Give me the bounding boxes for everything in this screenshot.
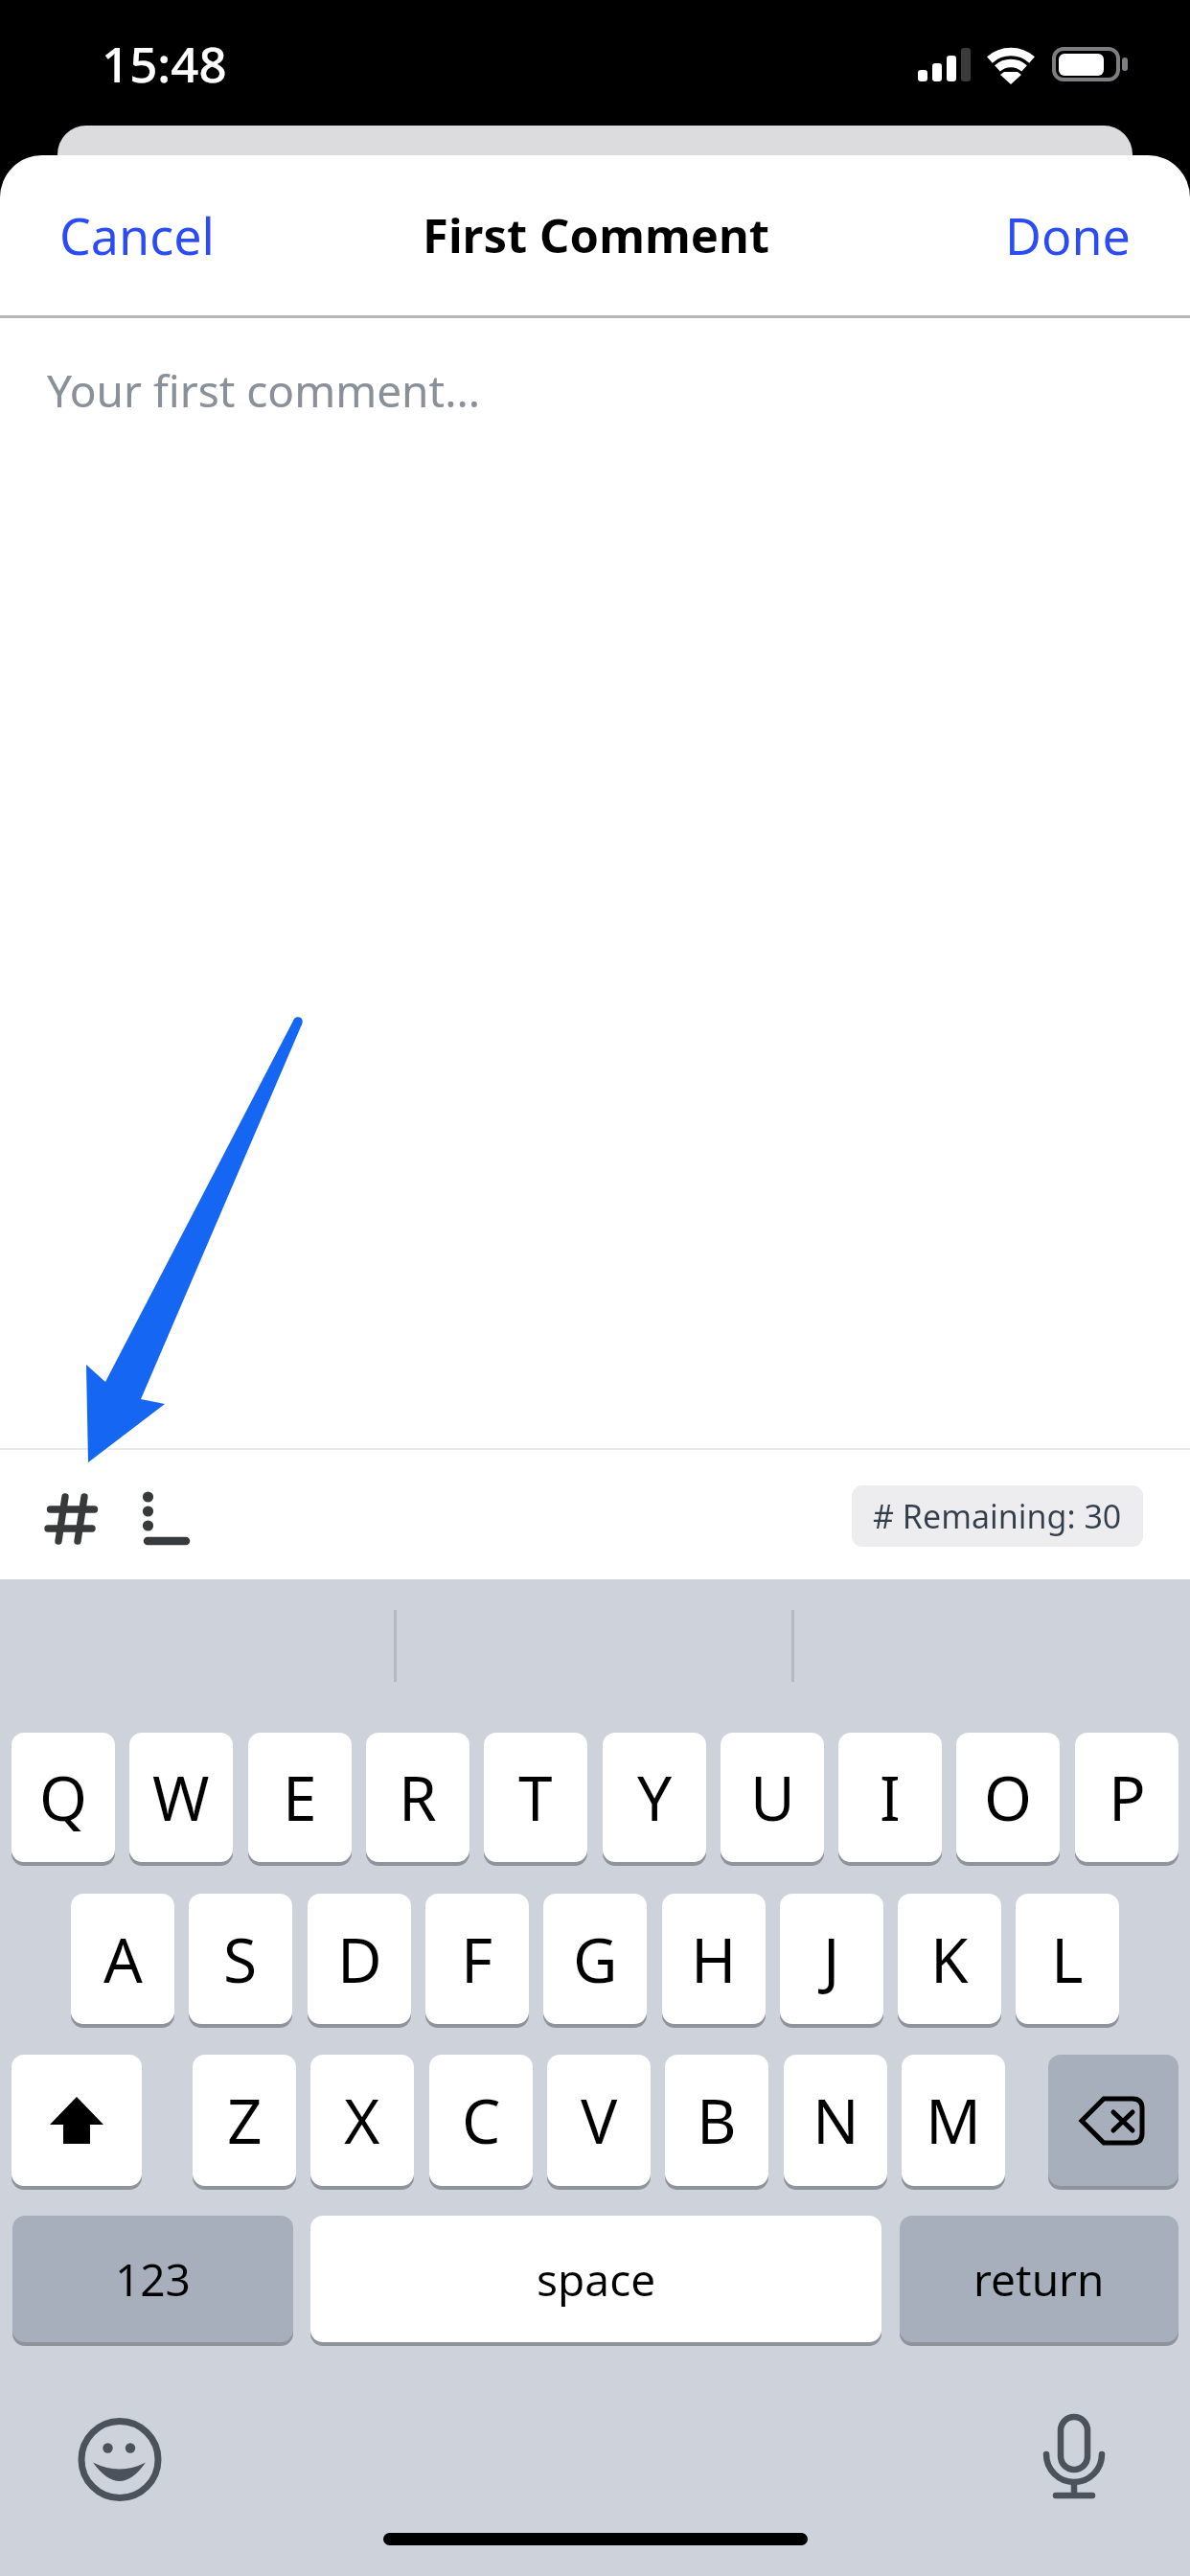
button[interactable]: K (898, 1894, 1001, 2024)
button[interactable]: Dictation (1040, 2410, 1109, 2504)
staticText: First Comment (423, 203, 770, 267)
staticText: W (152, 1756, 210, 1839)
button[interactable]: G (543, 1894, 647, 2024)
button[interactable]: W (129, 1733, 233, 1862)
staticText: K (930, 1918, 969, 2001)
button[interactable]: N (784, 2055, 887, 2186)
button[interactable]: F (425, 1894, 529, 2024)
button[interactable]: V (547, 2055, 651, 2186)
button[interactable]: Z (193, 2055, 296, 2186)
staticText: M (926, 2079, 982, 2162)
button[interactable]: S (189, 1894, 292, 2024)
button[interactable]: space (310, 2216, 881, 2342)
staticText: R (399, 1756, 437, 1839)
staticText: F (461, 1918, 493, 2001)
button[interactable]: H (662, 1894, 766, 2024)
button[interactable]: X (310, 2055, 414, 2186)
button[interactable]: Hashtag (29, 1476, 117, 1560)
button[interactable]: M (902, 2055, 1005, 2186)
button[interactable]: Backspace (1048, 2055, 1179, 2186)
button[interactable]: Cancel (33, 180, 241, 290)
staticText: space (537, 2249, 656, 2310)
staticText: D (337, 1918, 382, 2001)
button[interactable]: D (308, 1894, 411, 2024)
button[interactable]: Emoji (76, 2415, 164, 2503)
staticText: J (823, 1918, 840, 2001)
button[interactable]: return (900, 2216, 1179, 2342)
staticText: Cancel (59, 201, 215, 269)
button[interactable]: Insert list (134, 1476, 201, 1560)
button[interactable]: Shift (11, 2055, 142, 2186)
staticText: B (697, 2079, 737, 2162)
button[interactable]: I (838, 1733, 942, 1862)
button[interactable]: L (1016, 1894, 1119, 2024)
staticText: V (581, 2079, 618, 2162)
staticText: N (812, 2079, 859, 2162)
staticText: 123 (115, 2249, 191, 2310)
button[interactable]: Your first comment... (0, 318, 1190, 1448)
button[interactable]: P (1075, 1733, 1179, 1862)
button[interactable]: 123 (12, 2216, 293, 2342)
staticText: L (1051, 1918, 1084, 2001)
button[interactable]: T (484, 1733, 587, 1862)
button[interactable]: R (366, 1733, 469, 1862)
button[interactable]: # Remaining: 30 (852, 1485, 1143, 1547)
staticText: P (1109, 1756, 1146, 1839)
staticText: Z (227, 2079, 263, 2162)
button[interactable]: O (956, 1733, 1060, 1862)
staticText: H (691, 1918, 737, 2001)
staticText: S (223, 1918, 258, 2001)
staticText: Y (637, 1756, 673, 1839)
staticText: E (283, 1756, 317, 1839)
button[interactable]: A (71, 1894, 174, 2024)
button[interactable]: Y (603, 1733, 706, 1862)
staticText: G (573, 1918, 618, 2001)
staticText: A (103, 1918, 143, 2001)
button[interactable]: B (665, 2055, 768, 2186)
button[interactable]: Done (978, 180, 1157, 290)
button[interactable]: Q (11, 1733, 115, 1862)
staticText: I (880, 1756, 901, 1839)
button[interactable]: J (780, 1894, 883, 2024)
staticText: O (984, 1756, 1032, 1839)
button[interactable]: E (248, 1733, 352, 1862)
staticText: T (518, 1756, 553, 1839)
staticText: Done (1005, 201, 1131, 269)
staticText: Q (39, 1756, 87, 1839)
staticText: C (462, 2079, 501, 2162)
staticText: Your first comment... (47, 360, 481, 421)
button[interactable]: C (429, 2055, 533, 2186)
staticText: X (344, 2079, 380, 2162)
staticText: # Remaining: 30 (873, 1494, 1122, 1538)
staticText: return (973, 2249, 1105, 2310)
staticText: 15:48 (102, 30, 227, 96)
staticText: U (750, 1756, 795, 1839)
button[interactable]: U (721, 1733, 824, 1862)
